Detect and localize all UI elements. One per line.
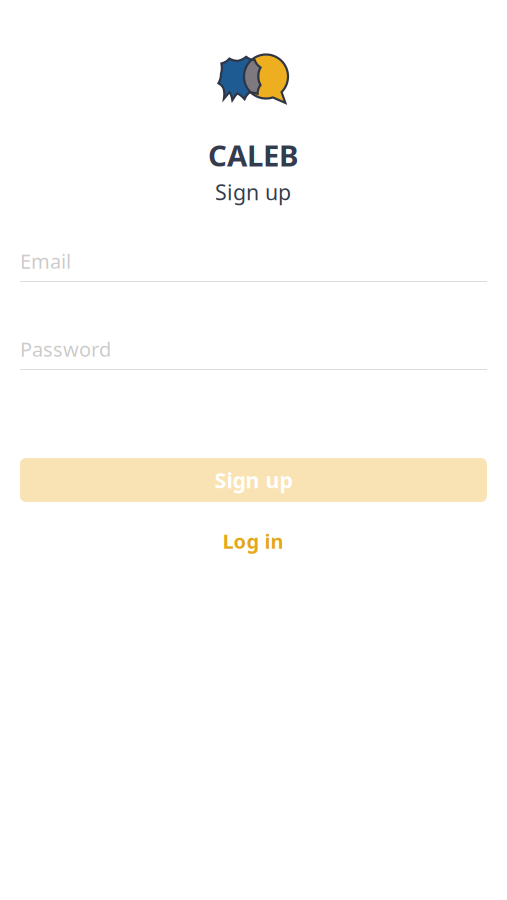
staticText: Email bbox=[20, 248, 71, 274]
staticText: CALEB bbox=[208, 135, 299, 174]
button[interactable]: Password bbox=[20, 338, 487, 370]
button[interactable]: Sign up bbox=[20, 458, 487, 502]
staticText: Sign up bbox=[215, 178, 291, 206]
staticText: Password bbox=[20, 336, 111, 362]
staticText: Log in bbox=[222, 528, 283, 554]
staticText: Sign up bbox=[214, 466, 292, 494]
button[interactable]: Email bbox=[20, 250, 487, 282]
button[interactable]: Log in bbox=[193, 526, 313, 556]
